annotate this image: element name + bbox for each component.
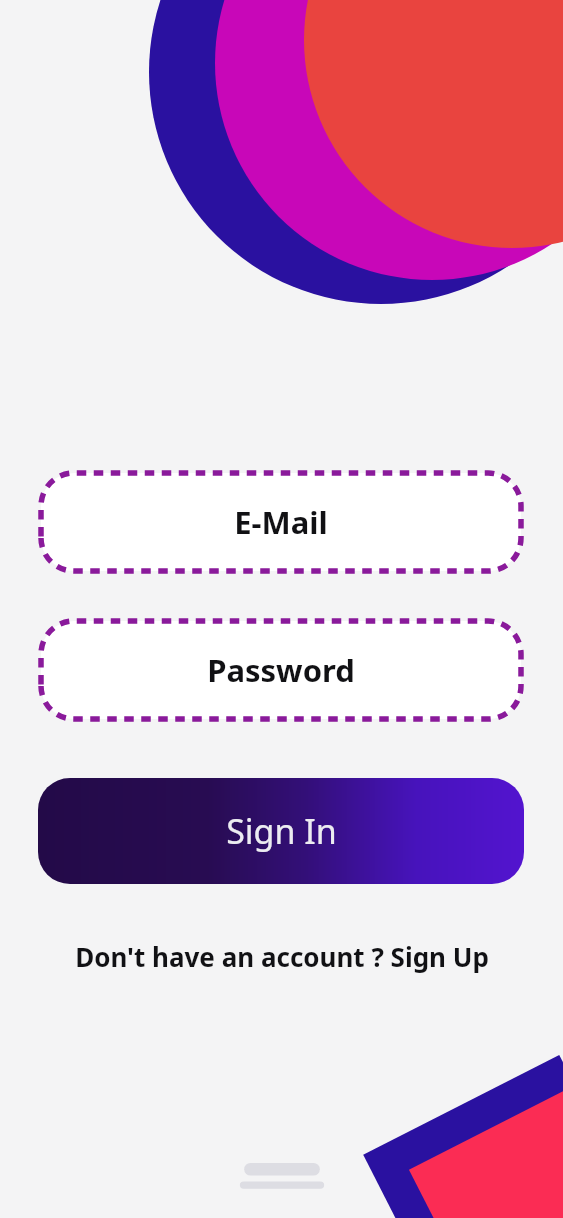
button[interactable]: Sign In <box>38 778 524 884</box>
staticText: Sign In <box>226 808 337 854</box>
staticText: Password <box>207 649 355 691</box>
staticText: Don't have an account ? Sign Up <box>75 939 489 974</box>
button[interactable]: Password <box>38 618 524 722</box>
button[interactable]: E-Mail <box>38 470 524 574</box>
staticText: E-Mail <box>234 501 328 543</box>
button[interactable]: Don't have an account ? Sign Up <box>34 936 529 976</box>
